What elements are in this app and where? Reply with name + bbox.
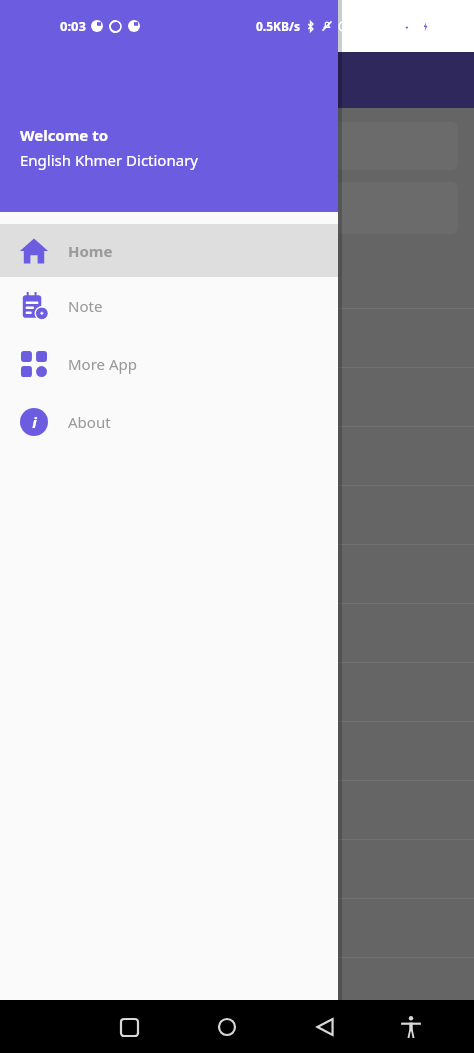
button[interactable] [0,604,474,663]
button[interactable] [16,182,458,234]
staticText: English [30,135,88,158]
button[interactable]: Recent apps [105,1003,153,1051]
staticText: 0.5KB/s [256,18,301,34]
button[interactable]: More App [0,335,338,393]
staticText: Welcome to [20,125,109,145]
button[interactable] [0,840,474,899]
button[interactable] [0,250,474,309]
button[interactable] [0,722,474,781]
button[interactable]: Accessibility [387,1003,435,1051]
button[interactable] [0,368,474,427]
staticText: About [68,412,111,432]
button[interactable]: i [0,393,338,451]
button[interactable]: Home [203,1003,251,1051]
staticText: English Khmer Dictionary [20,150,198,170]
button[interactable] [0,781,474,840]
staticText: Home [68,241,113,261]
button[interactable] [0,663,474,722]
button[interactable] [0,486,474,545]
staticText: Note [68,296,103,316]
staticText: More App [68,354,137,374]
button[interactable] [0,899,474,958]
button[interactable]: Note [0,277,338,335]
button[interactable] [0,309,474,368]
staticText: i [32,412,37,432]
staticText: 0:03 [60,17,86,35]
button[interactable]: Home [0,224,338,277]
button[interactable] [0,545,474,604]
button[interactable] [0,427,474,486]
button[interactable]: Back [301,1003,349,1051]
button[interactable]: English [16,122,458,170]
